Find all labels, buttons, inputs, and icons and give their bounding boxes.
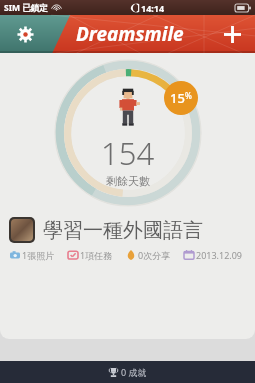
button[interactable]: Add — [209, 15, 255, 53]
staticText: 14:14 — [141, 2, 165, 14]
staticText: 1項任務 — [80, 249, 113, 261]
staticText: 0次分享 — [138, 249, 171, 261]
staticText: 剩餘天數 — [106, 174, 150, 188]
staticText: 2013.12.09 — [196, 249, 243, 261]
button[interactable]: Settings — [0, 15, 50, 53]
staticText: 1張照片 — [22, 249, 55, 261]
button[interactable]: 0 成就 — [0, 361, 255, 383]
staticText: % — [185, 90, 192, 101]
button[interactable]: 15 — [0, 53, 255, 339]
staticText: 15 — [170, 89, 185, 107]
staticText: Dreamsmile — [76, 21, 184, 47]
staticText: 154 — [101, 132, 155, 174]
staticText: 學習一種外國語言 — [43, 218, 203, 243]
button[interactable]: 學習一種外國語言 — [9, 217, 246, 243]
staticText: 0 成就 — [121, 366, 147, 378]
staticText: SIM 已鎖定 — [4, 2, 48, 14]
